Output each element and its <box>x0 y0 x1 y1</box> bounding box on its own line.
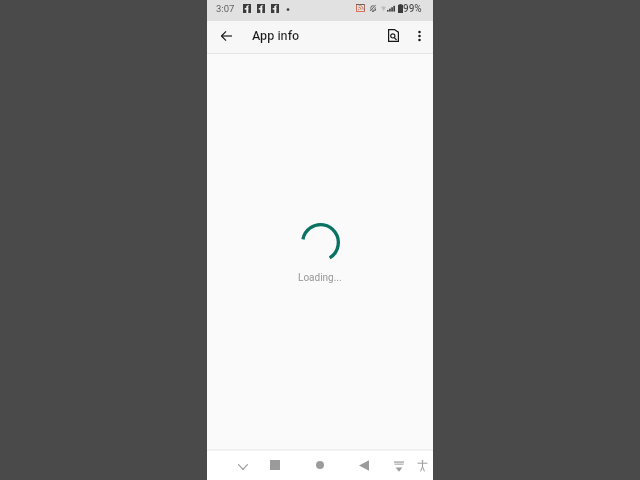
button[interactable]: Recent apps <box>268 451 282 479</box>
button[interactable]: More options <box>408 21 430 50</box>
staticText: 99% <box>403 3 422 15</box>
button[interactable]: Hide keyboard <box>236 453 250 480</box>
button[interactable]: Accessibility <box>415 451 429 479</box>
button[interactable]: Find in page <box>380 21 406 50</box>
button[interactable]: Navigate up <box>214 21 239 50</box>
staticText: 3:07 <box>216 3 235 14</box>
button[interactable]: Back <box>357 451 371 479</box>
button[interactable]: Switch input method <box>392 452 406 480</box>
staticText: Loading... <box>298 272 342 284</box>
staticText: App info <box>252 28 300 43</box>
button[interactable]: Home <box>313 451 327 479</box>
